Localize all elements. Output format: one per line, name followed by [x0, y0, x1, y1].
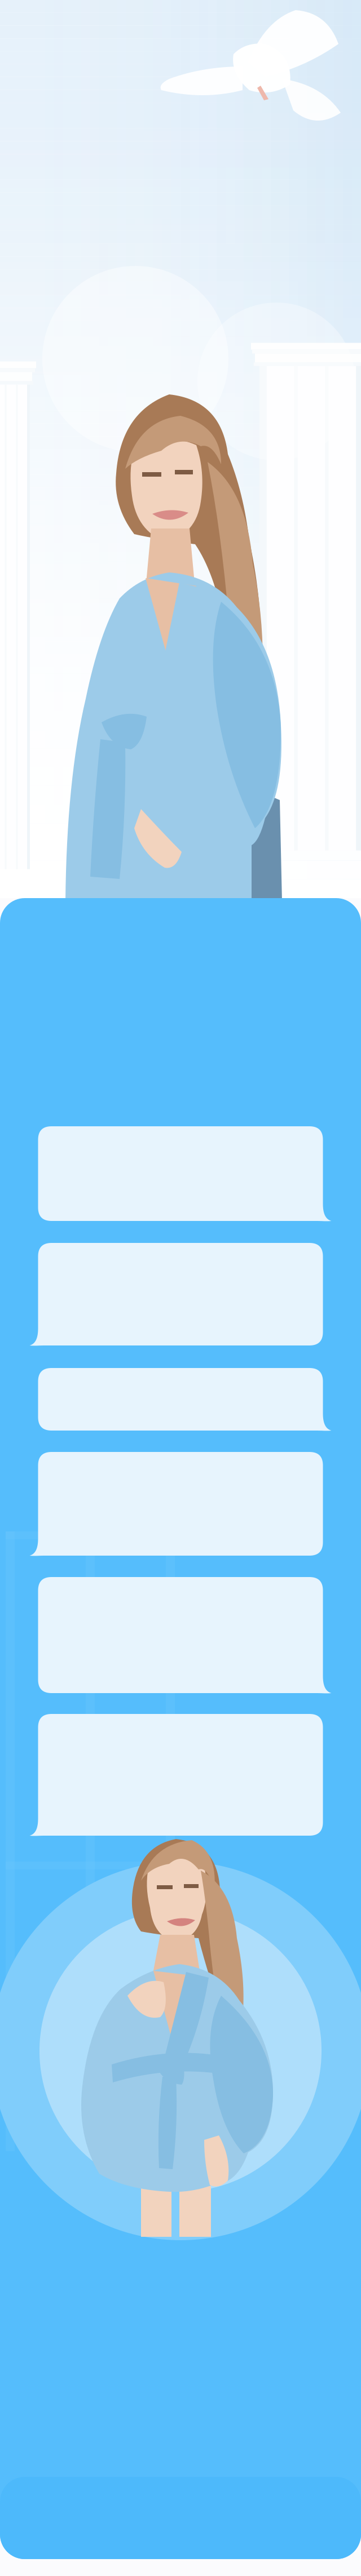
button[interactable]: Received message: [30, 1714, 323, 1836]
button[interactable]: Received message: [30, 1243, 323, 1345]
button[interactable]: Sent message: [38, 1368, 331, 1431]
button[interactable]: Sent message: [38, 1126, 331, 1221]
button[interactable]: Received message: [30, 1452, 323, 1556]
button[interactable]: Sent message: [38, 1577, 331, 1693]
